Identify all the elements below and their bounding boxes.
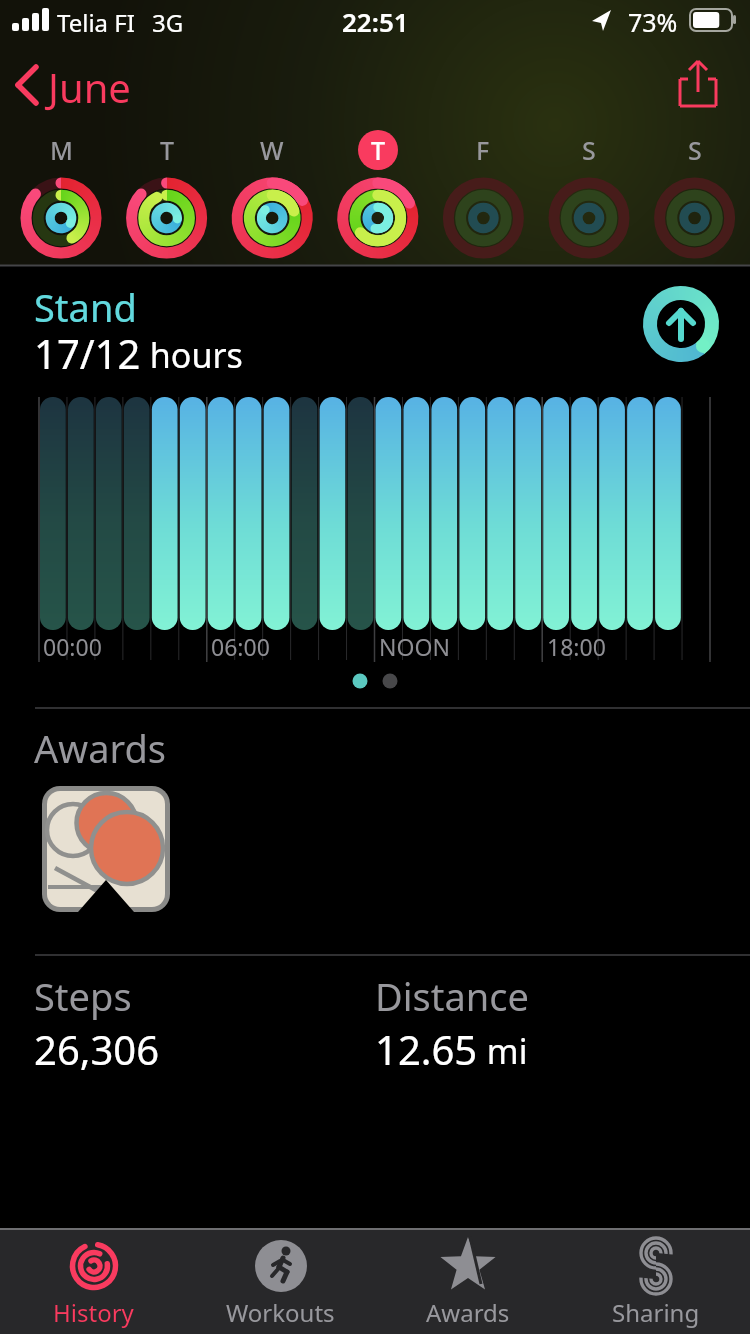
staticText: F <box>476 133 490 167</box>
staticText: 73% <box>628 5 678 39</box>
staticText: hours <box>141 332 243 378</box>
staticText: Steps <box>34 970 132 1022</box>
staticText: 12.65 <box>375 1022 478 1076</box>
staticText: NOON <box>379 631 450 662</box>
button[interactable]: T <box>358 130 398 170</box>
staticText: Awards <box>34 722 166 774</box>
button[interactable]: T <box>147 130 187 170</box>
staticText: Stand <box>34 281 137 333</box>
staticText: T <box>160 133 175 167</box>
staticText: T <box>371 133 386 167</box>
button[interactable]: F <box>463 130 503 170</box>
button[interactable]: Awards <box>374 1228 562 1334</box>
button[interactable]: S <box>569 130 609 170</box>
staticText: History <box>53 1296 134 1329</box>
staticText: 22:51 <box>342 4 409 39</box>
staticText: June <box>48 60 131 114</box>
staticText: S <box>582 133 596 167</box>
button[interactable] <box>642 285 720 363</box>
button[interactable] <box>40 785 170 915</box>
staticText: 18:00 <box>547 631 606 662</box>
button[interactable] <box>672 56 724 112</box>
button[interactable]: W <box>252 130 292 170</box>
staticText: M <box>50 133 73 167</box>
button[interactable]: June <box>0 60 83 114</box>
staticText: 00:00 <box>43 631 102 662</box>
staticText: S <box>688 133 702 167</box>
button[interactable]: History <box>0 1228 187 1334</box>
staticText: Awards <box>426 1296 510 1329</box>
staticText: 17/12 <box>34 326 141 380</box>
staticText: W <box>260 133 284 167</box>
staticText: Sharing <box>612 1296 700 1329</box>
button[interactable]: M <box>41 130 81 170</box>
button[interactable]: S <box>675 130 715 170</box>
button[interactable]: Sharing <box>562 1228 750 1334</box>
staticText: mi <box>478 1028 528 1074</box>
staticText: Distance <box>375 970 529 1022</box>
staticText: 26,306 <box>34 1022 160 1076</box>
button[interactable]: Workouts <box>187 1228 374 1334</box>
staticText: 3G <box>152 6 184 39</box>
staticText: Telia FI <box>57 6 135 39</box>
staticText: Workouts <box>226 1296 335 1329</box>
staticText: 06:00 <box>211 631 270 662</box>
